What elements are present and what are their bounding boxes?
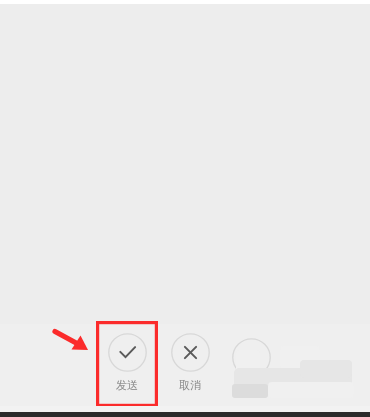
staticText: 取消 <box>179 378 201 392</box>
button[interactable]: 取消 <box>165 333 215 392</box>
button[interactable]: More options <box>232 338 271 377</box>
staticText: 发送 <box>116 378 138 392</box>
button[interactable]: 发送 <box>102 333 152 392</box>
